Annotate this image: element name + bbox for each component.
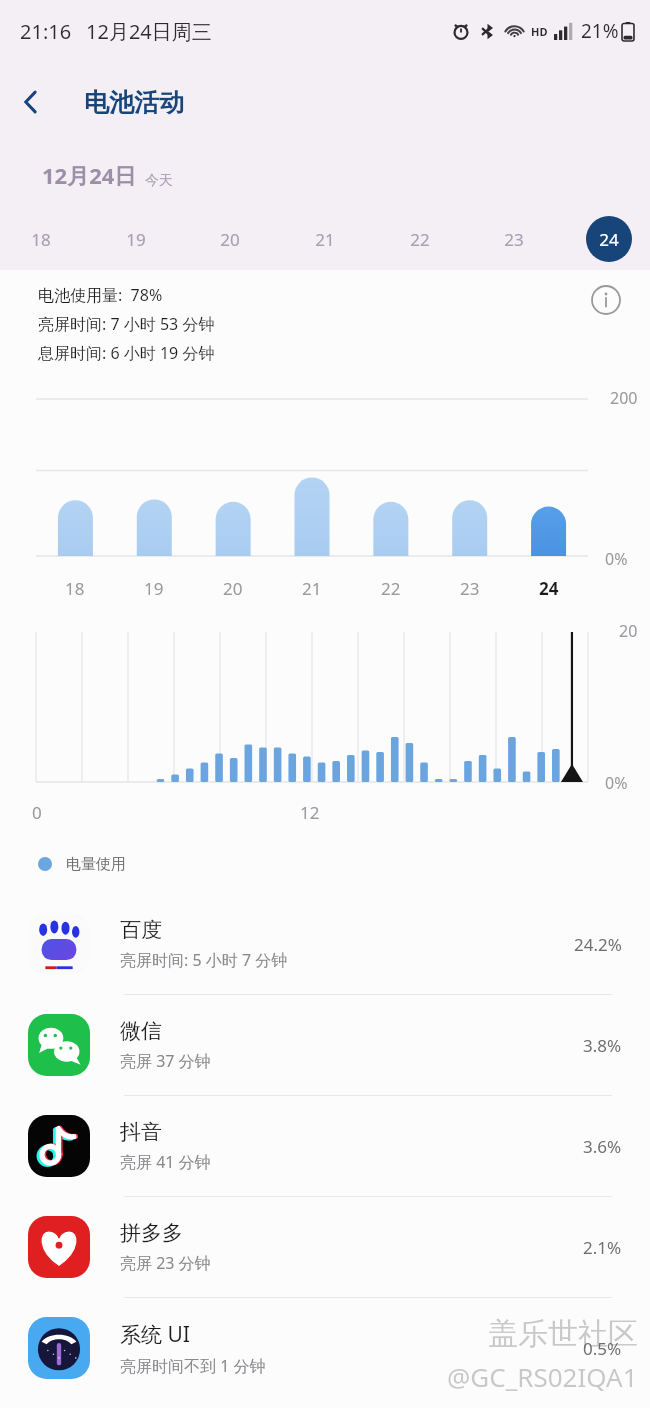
button[interactable]: 18 (18, 216, 64, 262)
button[interactable]: Back (0, 71, 62, 133)
staticText: 21% (581, 18, 619, 44)
staticText: 3.8% (583, 1034, 622, 1057)
staticText: 23 (460, 577, 480, 600)
staticText: 12月24日 (42, 160, 137, 190)
staticText: 2.1% (583, 1236, 622, 1259)
staticText: 系统 UI (120, 1320, 190, 1349)
staticText: 盖乐世社区 (488, 1315, 638, 1353)
staticText: HD (531, 24, 548, 39)
button[interactable]: 21 (302, 216, 348, 262)
staticText: 息屏时间: 6 小时 19 分钟 (38, 342, 215, 364)
staticText: 21 (315, 228, 335, 251)
staticText: 亮屏 37 分钟 (120, 1050, 211, 1072)
staticText: 0% (605, 772, 628, 794)
staticText: 24.2% (574, 933, 622, 956)
staticText: 亮屏时间: 5 小时 7 分钟 (120, 949, 288, 971)
staticText: 200 (610, 387, 638, 409)
button[interactable]: 百度 (0, 894, 650, 994)
button[interactable]: 20 (207, 216, 253, 262)
staticText: 12月24日周三 (86, 18, 212, 45)
staticText: 19 (144, 577, 164, 600)
button[interactable]: 系统 UI (0, 1298, 650, 1398)
staticText: 今天 (145, 172, 173, 190)
staticText: 22 (381, 577, 401, 600)
button[interactable]: 23 (491, 216, 537, 262)
staticText: 23 (504, 228, 524, 251)
staticText: 18 (31, 228, 51, 251)
staticText: 拼多多 (120, 1220, 183, 1246)
staticText: 亮屏 41 分钟 (120, 1151, 211, 1173)
staticText: 0 (32, 801, 42, 824)
staticText: 20 (619, 620, 638, 642)
button[interactable]: Info (584, 278, 628, 322)
staticText: 22 (410, 228, 430, 251)
staticText: 12 (300, 801, 320, 824)
staticText: 0.5% (583, 1337, 622, 1360)
staticText: 3.6% (583, 1135, 622, 1158)
button[interactable]: 24 (586, 216, 632, 262)
button[interactable]: 抖音 (0, 1096, 650, 1196)
button[interactable]: 拼多多 (0, 1197, 650, 1297)
staticText: 亮屏时间不到 1 分钟 (120, 1355, 266, 1377)
staticText: 21 (302, 577, 322, 600)
button[interactable]: 微信 (0, 995, 650, 1095)
staticText: 电池活动 (84, 87, 184, 118)
staticText: 电池使用量: 78% (38, 284, 163, 306)
staticText: 20 (223, 577, 243, 600)
staticText: 20 (220, 228, 240, 251)
button[interactable]: 22 (397, 216, 443, 262)
staticText: 亮屏 23 分钟 (120, 1252, 211, 1274)
button[interactable]: 19 (113, 216, 159, 262)
staticText: 百度 (120, 917, 162, 943)
staticText: 24 (599, 228, 619, 251)
staticText: @GC_RS02IQA1 (447, 1359, 638, 1394)
staticText: 18 (65, 577, 85, 600)
staticText: 抖音 (120, 1119, 162, 1145)
staticText: 微信 (120, 1018, 162, 1044)
staticText: 0% (605, 548, 628, 570)
staticText: 24 (539, 577, 559, 600)
staticText: 21:16 (20, 18, 72, 45)
staticText: 亮屏时间: 7 小时 53 分钟 (38, 313, 215, 335)
staticText: 电量使用 (66, 855, 126, 874)
staticText: 19 (126, 228, 146, 251)
